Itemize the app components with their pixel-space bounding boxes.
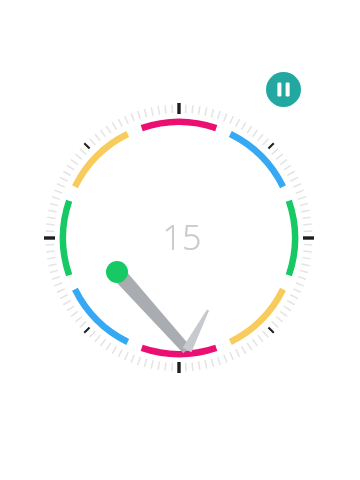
button[interactable]: Pause timer xyxy=(266,72,301,107)
